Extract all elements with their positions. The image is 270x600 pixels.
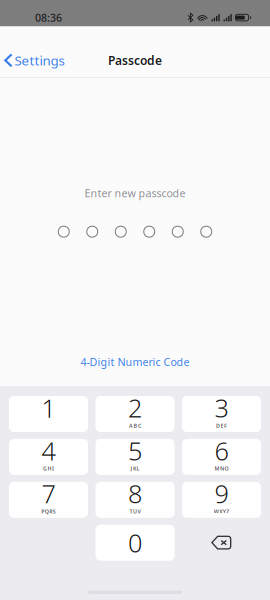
button[interactable]: 9 <box>182 482 261 518</box>
button[interactable]: 7 <box>9 482 88 518</box>
button[interactable]: 8 <box>95 482 174 518</box>
staticText: DEF <box>216 422 227 429</box>
staticText: JKL <box>130 465 139 472</box>
staticText: ABC <box>129 422 141 429</box>
button[interactable]: 2 <box>95 396 174 432</box>
staticText: 6 <box>214 434 228 467</box>
button[interactable]: 4-Digit Numeric Code <box>70 350 199 374</box>
staticText: 5 <box>128 434 142 467</box>
staticText: TUV <box>129 508 140 515</box>
staticText: 4-Digit Numeric Code <box>80 355 189 369</box>
staticText: 9 <box>214 477 228 510</box>
staticText: 8 <box>128 477 142 510</box>
button[interactable]: 1 <box>9 396 88 432</box>
button[interactable]: Delete <box>182 525 261 561</box>
staticText: Passcode <box>108 52 162 68</box>
staticText: 0 <box>128 526 142 559</box>
button[interactable]: 0 <box>95 525 174 561</box>
staticText: 1 <box>41 391 55 425</box>
button[interactable]: 5 <box>95 439 174 475</box>
button[interactable]: Settings <box>0 45 64 75</box>
button[interactable]: 4 <box>9 439 88 475</box>
staticText: Settings <box>14 51 64 69</box>
staticText: 08:36 <box>35 10 62 25</box>
staticText: 2 <box>128 391 142 424</box>
staticText: PQRS <box>41 508 56 515</box>
staticText: Enter new passcode <box>84 186 185 200</box>
staticText: WXYZ <box>214 508 229 515</box>
staticText: MNO <box>214 465 228 472</box>
button[interactable]: 3 <box>182 396 261 432</box>
staticText: GHI <box>43 465 54 472</box>
button[interactable]: 6 <box>182 439 261 475</box>
staticText: 3 <box>214 391 228 424</box>
staticText: 7 <box>41 477 55 510</box>
staticText: 4 <box>41 434 55 467</box>
